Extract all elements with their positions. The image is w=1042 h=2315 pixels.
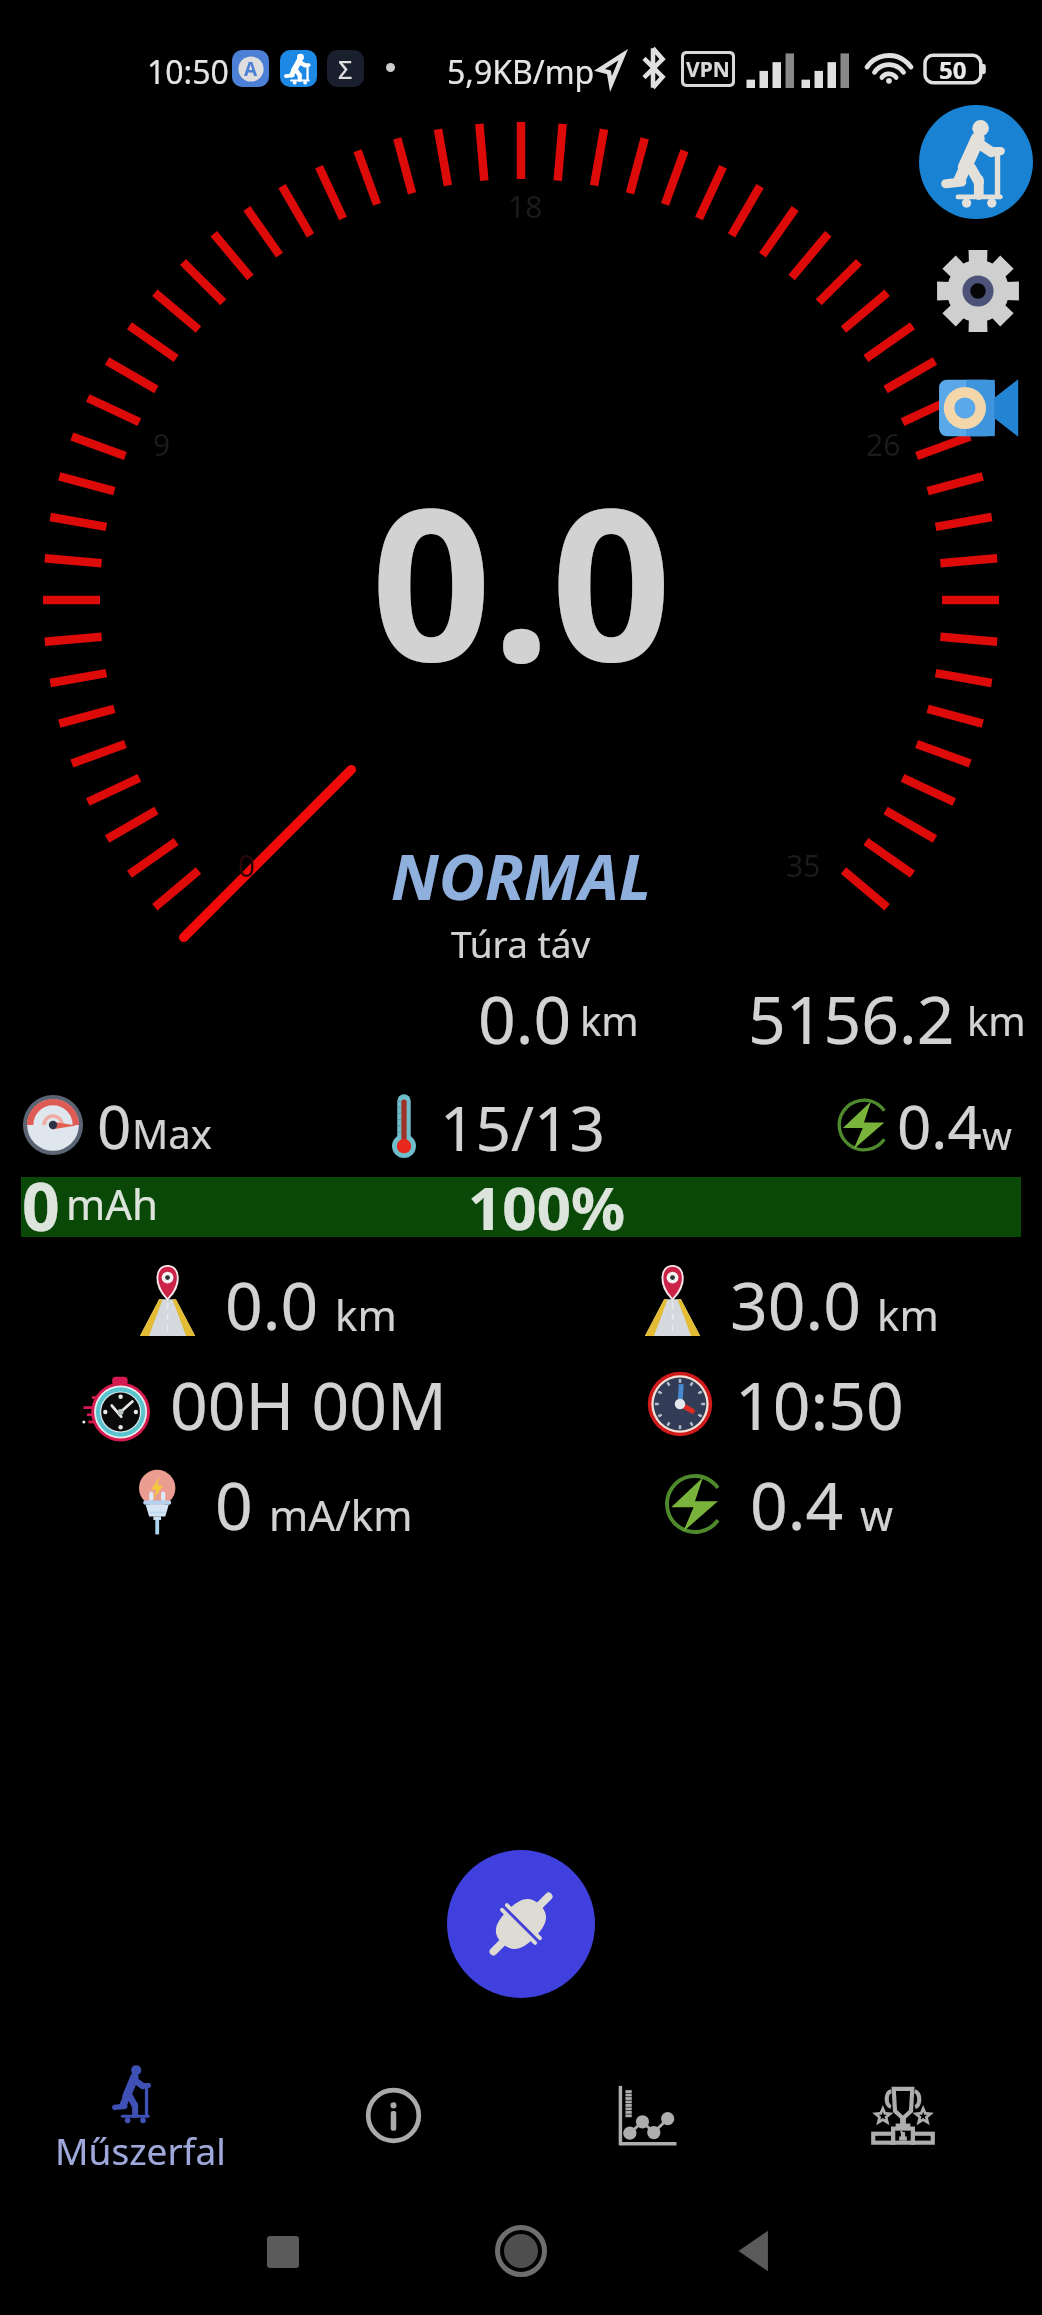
staticText: 18 [508, 186, 543, 227]
staticText: 35 [786, 845, 821, 886]
button[interactable] [21, 1177, 1021, 1237]
staticText: 0 [238, 845, 256, 886]
staticText: w [982, 1109, 1012, 1161]
button[interactable]: 30.0 [640, 1259, 939, 1349]
staticText: km [967, 993, 1026, 1047]
staticText: 0.0 [371, 435, 672, 722]
staticText: km [335, 1286, 397, 1343]
button[interactable]: Vehicle profile [919, 105, 1033, 219]
staticText: 0 [215, 1459, 253, 1549]
staticText: 0.0 [225, 1259, 319, 1349]
staticText: 0 [97, 1085, 132, 1165]
staticText: 5,9KB/mp [447, 50, 595, 94]
button[interactable]: Settings [936, 249, 1020, 333]
button[interactable]: 00H 00M [80, 1359, 447, 1449]
button[interactable]: Back [737, 2228, 773, 2274]
staticText: Max [132, 1106, 212, 1160]
staticText: 15/13 [440, 1085, 605, 1165]
button[interactable]: Connect [447, 1850, 595, 1998]
staticText: A [244, 56, 258, 82]
staticText: Műszerfal [55, 2125, 226, 2175]
button[interactable]: Home [495, 2225, 547, 2277]
staticText: Σ [338, 52, 353, 86]
button[interactable]: Record video [936, 376, 1020, 440]
staticText: 0.0 [478, 973, 572, 1063]
staticText: 9 [153, 424, 171, 465]
button[interactable]: 0 [21, 1085, 212, 1165]
staticText: km [877, 1286, 939, 1343]
staticText: 10:50 [735, 1359, 904, 1449]
button[interactable]: 0.0 [135, 1259, 397, 1349]
staticText: w [860, 1486, 894, 1543]
button[interactable]: 0.4 [660, 1459, 894, 1549]
staticText: 30.0 [730, 1259, 861, 1349]
staticText: mAh [66, 1175, 159, 1232]
staticText: 50 [939, 53, 967, 86]
staticText: 26 [866, 424, 901, 465]
button[interactable]: Records [781, 2036, 1042, 2186]
staticText: 0.4 [750, 1459, 844, 1549]
button[interactable]: Recent apps [267, 2236, 299, 2268]
staticText: mA/km [269, 1486, 413, 1543]
staticText: 0.4 [897, 1085, 982, 1165]
staticText: VPN [686, 55, 730, 84]
staticText: 100% [468, 1166, 626, 1248]
staticText: Túra táv [451, 918, 591, 968]
button[interactable]: 10:50 [645, 1359, 904, 1449]
button[interactable]: Statistics [520, 2036, 781, 2186]
button[interactable]: Info [260, 2036, 520, 2186]
staticText: 0 [22, 1160, 60, 1250]
button[interactable]: 0 [125, 1459, 413, 1549]
staticText: 5156.2 [748, 973, 955, 1063]
button[interactable]: Műszerfal [0, 2036, 260, 2186]
staticText: NORMAL [391, 833, 652, 919]
staticText: 10:50 [147, 50, 229, 94]
button[interactable]: 15/13 [392, 1085, 605, 1165]
button[interactable]: 0.4 [833, 1085, 1012, 1165]
staticText: 00H 00M [170, 1359, 447, 1449]
staticText: km [580, 993, 639, 1047]
